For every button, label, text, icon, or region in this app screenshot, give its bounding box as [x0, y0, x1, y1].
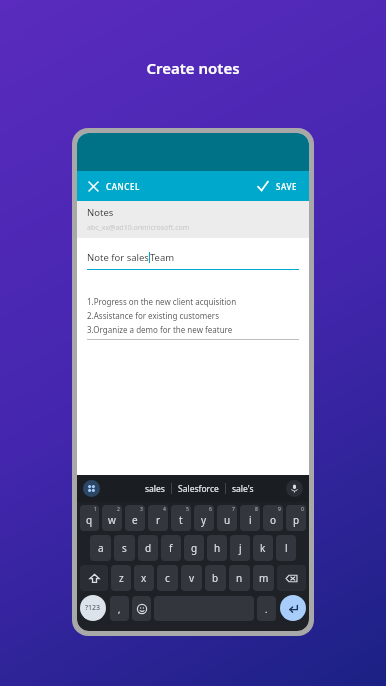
staticText: k: [260, 541, 266, 555]
button[interactable]: Emoji: [132, 596, 151, 621]
staticText: d: [145, 541, 152, 555]
staticText: 7: [232, 506, 235, 513]
button[interactable]: 1: [80, 505, 99, 531]
button[interactable]: h: [207, 535, 227, 561]
staticText: ,: [118, 603, 121, 615]
staticText: t: [179, 513, 183, 527]
staticText: ?123: [85, 603, 101, 613]
button[interactable]: sales: [139, 480, 171, 498]
staticText: 2.Assistance for existing customers: [87, 310, 219, 321]
staticText: CANCEL: [106, 181, 140, 192]
staticText: p: [293, 513, 300, 527]
button[interactable]: 4: [148, 505, 168, 531]
staticText: w: [108, 513, 116, 527]
staticText: n: [236, 571, 243, 585]
staticText: sale's: [232, 483, 254, 495]
button[interactable]: Backspace: [277, 565, 306, 591]
staticText: Salesforce: [178, 483, 219, 495]
staticText: 4: [163, 506, 166, 513]
button[interactable]: m: [253, 565, 274, 591]
button[interactable]: d: [138, 535, 158, 561]
staticText: c: [165, 571, 170, 585]
button[interactable]: Period: [257, 596, 276, 621]
button[interactable]: g: [184, 535, 204, 561]
button[interactable]: z: [111, 565, 131, 591]
staticText: .: [265, 603, 268, 615]
staticText: 3.Organize a demo for the new feature: [87, 324, 233, 335]
button[interactable]: sale's: [226, 480, 260, 498]
staticText: Note for sales: [87, 251, 149, 264]
staticText: Notes: [87, 206, 114, 219]
staticText: 3: [140, 506, 143, 513]
staticText: 8: [255, 506, 258, 513]
staticText: 6: [209, 506, 212, 513]
staticText: 1.Progress on the new client acquisition: [87, 296, 237, 307]
button[interactable]: 3: [125, 505, 145, 531]
staticText: f: [169, 541, 173, 555]
staticText: j: [239, 541, 242, 555]
staticText: l: [285, 541, 288, 555]
button[interactable]: 2: [102, 505, 122, 531]
button[interactable]: 0: [286, 505, 306, 531]
staticText: Team: [150, 251, 175, 264]
staticText: o: [270, 513, 277, 527]
staticText: sales: [145, 483, 165, 495]
staticText: g: [191, 541, 198, 555]
button[interactable]: Shift: [80, 565, 108, 591]
button[interactable]: Voice input: [286, 480, 303, 497]
staticText: Create notes: [146, 58, 240, 78]
staticText: v: [189, 571, 195, 585]
staticText: 5: [186, 506, 189, 513]
button[interactable]: 5: [171, 505, 191, 531]
staticText: x: [141, 571, 147, 585]
staticText: u: [224, 513, 231, 527]
button[interactable]: 9: [263, 505, 283, 531]
button[interactable]: ?123: [80, 595, 106, 621]
staticText: i: [249, 513, 252, 527]
button[interactable]: CANCEL: [86, 177, 142, 196]
staticText: z: [119, 571, 124, 585]
button[interactable]: Comma: [110, 596, 129, 621]
button[interactable]: Enter: [280, 595, 306, 621]
staticText: 1: [94, 506, 97, 513]
staticText: y: [201, 513, 207, 527]
staticText: SAVE: [276, 181, 298, 192]
button[interactable]: 8: [240, 505, 260, 531]
button[interactable]: v: [181, 565, 202, 591]
button[interactable]: c: [157, 565, 178, 591]
button[interactable]: Salesforce: [172, 480, 225, 498]
staticText: a: [98, 541, 104, 555]
button[interactable]: k: [253, 535, 273, 561]
button[interactable]: b: [205, 565, 226, 591]
button[interactable]: 7: [217, 505, 237, 531]
staticText: 9: [278, 506, 281, 513]
staticText: m: [259, 571, 269, 585]
button[interactable]: SAVE: [255, 176, 300, 196]
staticText: q: [86, 513, 93, 527]
button[interactable]: n: [229, 565, 250, 591]
button[interactable]: Keyboard options: [83, 480, 100, 497]
button[interactable]: Notes: [77, 201, 309, 238]
button[interactable]: x: [134, 565, 154, 591]
staticText: e: [132, 513, 138, 527]
staticText: s: [122, 541, 127, 555]
staticText: 0: [301, 506, 304, 513]
staticText: abc_xx@ad10.onmicrosoft.com: [87, 223, 190, 233]
staticText: h: [214, 541, 221, 555]
staticText: 2: [117, 506, 120, 513]
button[interactable]: f: [161, 535, 181, 561]
button[interactable]: l: [276, 535, 296, 561]
button[interactable]: s: [114, 535, 135, 561]
button[interactable]: a: [90, 535, 111, 561]
staticText: r: [156, 513, 161, 527]
button[interactable]: j: [230, 535, 250, 561]
staticText: b: [212, 571, 219, 585]
button[interactable]: 6: [194, 505, 214, 531]
